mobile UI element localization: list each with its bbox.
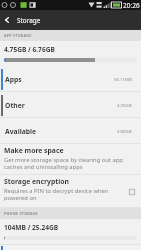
staticText: PHONE STORAGE [4, 211, 38, 216]
button[interactable]: Make more space [0, 144, 141, 175]
staticText: Get more storage space by clearing out a… [4, 156, 127, 171]
staticText: Other [5, 101, 25, 110]
staticText: 4.70GB [117, 102, 132, 108]
staticText: 2.00GB [117, 128, 132, 134]
staticText: Available [5, 127, 37, 136]
staticText: 55.11MB [114, 76, 132, 82]
staticText: Apps [5, 75, 22, 84]
staticText: 4.75GB / 6.76GB [4, 45, 55, 54]
button[interactable]: Available [0, 118, 141, 144]
button[interactable]: Storage encryption checkbox [126, 186, 138, 198]
staticText: APP STORAGE [4, 33, 32, 38]
staticText: 104MB / 25.24GB [4, 223, 59, 232]
staticText: Storage encryption [4, 177, 69, 186]
staticText: Requires a PIN to decrypt device when po… [4, 187, 127, 202]
staticText: Storage [17, 16, 41, 25]
button[interactable]: Other [0, 92, 141, 118]
button[interactable]: Storage encryption [0, 175, 141, 208]
staticText: 20:26 [123, 1, 140, 10]
button[interactable]: Back [0, 10, 14, 30]
staticText: Make more space [4, 146, 64, 155]
button[interactable]: Apps [0, 66, 141, 92]
